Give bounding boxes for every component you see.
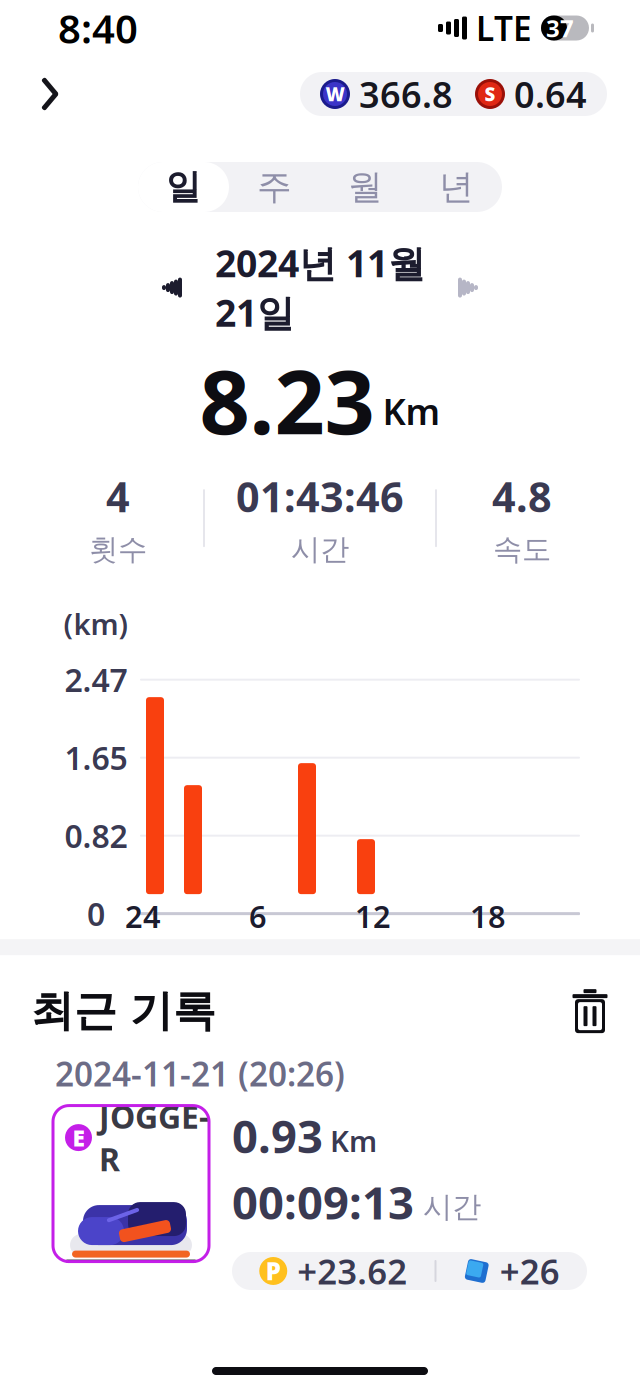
button[interactable]: Back	[22, 66, 78, 122]
staticText: +26	[500, 1248, 560, 1294]
staticText: 0	[87, 892, 105, 935]
staticText: 00:09:13	[232, 1172, 414, 1232]
button[interactable]: Delete records	[562, 983, 618, 1039]
staticText: 주	[257, 166, 292, 208]
staticText: 2024-11-21 (20:26)	[55, 1051, 345, 1096]
staticText: 01:43:46	[236, 469, 404, 524]
staticText: JOGGER	[99, 1095, 209, 1180]
staticText: 속도	[493, 532, 551, 568]
staticText: (km)	[63, 604, 128, 643]
staticText: 1.65	[64, 736, 127, 779]
staticText: 월	[348, 166, 383, 208]
staticText: LTE	[476, 6, 532, 50]
staticText: 2024년 11월 21일	[215, 238, 425, 337]
button[interactable]: 월	[320, 162, 411, 212]
staticText: 18	[470, 896, 506, 936]
staticText: 0.93	[232, 1106, 323, 1166]
staticText: 일	[166, 166, 201, 208]
staticText: W	[325, 82, 344, 106]
staticText: 시간	[423, 1189, 481, 1225]
button[interactable]: Balance 366.8 and 0.64	[300, 72, 607, 116]
button[interactable]: Next day	[445, 266, 491, 310]
button[interactable]: 년	[411, 162, 502, 212]
staticText: 6	[249, 896, 267, 936]
staticText: 8:40	[58, 1, 138, 54]
staticText: 최근 기록	[31, 985, 216, 1037]
staticText: +23.62	[297, 1248, 407, 1294]
staticText: Km	[382, 387, 440, 435]
staticText: 4.8	[492, 469, 552, 524]
button[interactable]: 주	[229, 162, 320, 212]
staticText: 37	[546, 12, 574, 44]
staticText: 0.64	[514, 70, 587, 118]
button[interactable]: Previous day	[149, 266, 195, 310]
staticText: Km	[330, 1121, 377, 1160]
staticText: 4	[106, 469, 130, 524]
staticText: 12	[355, 896, 391, 936]
staticText: 횟수	[89, 532, 147, 568]
staticText: S	[484, 82, 495, 106]
staticText: 8.23	[199, 342, 374, 459]
staticText: 366.8	[359, 70, 453, 118]
staticText: P	[266, 1255, 281, 1287]
staticText: 24	[125, 896, 161, 936]
staticText: 시간	[291, 532, 349, 568]
button[interactable]: 일	[138, 162, 229, 212]
button[interactable]: 2024-11-21 (20:26)	[33, 1053, 607, 1268]
staticText: 년	[439, 166, 474, 208]
staticText: 0.82	[64, 814, 127, 857]
staticText: E	[72, 1122, 84, 1153]
staticText: 2.47	[64, 658, 127, 701]
